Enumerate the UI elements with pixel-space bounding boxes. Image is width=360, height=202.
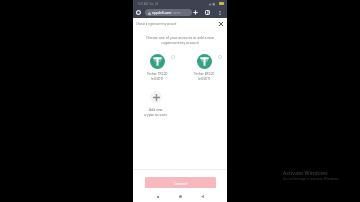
button[interactable]: Home: [176, 192, 185, 201]
staticText: Add new: [149, 107, 163, 111]
staticText: 9:41 AM Tue, 24: [138, 2, 158, 6]
button[interactable]: Open tabs: [204, 9, 211, 16]
staticText: 2: [207, 11, 209, 15]
staticText: app.defi.com: [152, 11, 171, 15]
staticText: Tether TRC20: [147, 71, 168, 75]
button[interactable]: Tether TRC20: [138, 54, 176, 80]
button[interactable]: Incognito: [135, 9, 142, 16]
staticText: (eUSDT): [198, 76, 211, 80]
staticText: crypto account: [144, 112, 167, 116]
staticText: /cache: [171, 11, 181, 15]
button[interactable]: Recent apps: [153, 192, 162, 201]
button[interactable]: More options: [216, 9, 223, 16]
button[interactable]: Add new: [137, 91, 174, 116]
button[interactable]: Tether ERC20: [185, 54, 223, 80]
button[interactable]: Connect: [145, 177, 216, 189]
staticText: Choose a cryptocurrency account: [136, 22, 177, 26]
staticText: Choose one of your accounts or add a new…: [133, 35, 227, 45]
button[interactable]: app.defi.com: [145, 9, 192, 16]
button[interactable]: New tab: [192, 9, 199, 16]
button[interactable]: Back: [198, 192, 207, 201]
staticText: Go to Settings to activate Windows.: [283, 176, 340, 181]
staticText: (eUSDT): [151, 76, 164, 80]
staticText: Tether ERC20: [194, 71, 215, 75]
staticText: Connect: [174, 181, 188, 186]
staticText: Activate Windows: [283, 169, 328, 176]
button[interactable]: Close: [217, 20, 225, 28]
